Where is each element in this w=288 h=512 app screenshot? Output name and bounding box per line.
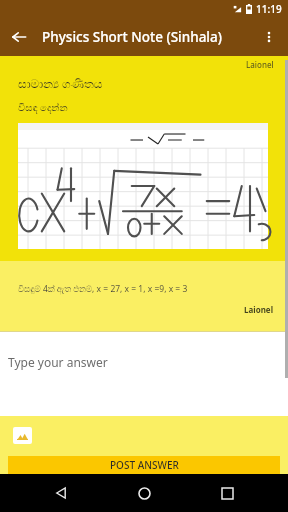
button[interactable]: Attach image [8,423,36,448]
button[interactable]: Home [122,474,166,512]
staticText: විසඳ දෙන්න [18,100,68,114]
staticText: 11:19 [256,2,282,16]
staticText: විසඳුම් 4ක් ඇත එනම්, x = 27, x = 1, x =9… [18,283,188,295]
button[interactable]: POST ANSWER [8,456,280,474]
staticText: Physics Short Note (Sinhala) [42,28,250,46]
staticText: POST ANSWER [110,458,179,472]
button[interactable]: More options [250,18,288,56]
button[interactable]: Recents [205,474,249,512]
staticText: Laionel [244,304,274,315]
button[interactable]: Back [39,474,83,512]
staticText: සාමාන්‍ය ගණිතය [18,75,103,91]
staticText: Laionel [246,59,274,70]
button[interactable]: Back [0,18,38,56]
staticText: Type your answer [8,354,108,370]
button[interactable]: Type your answer [0,332,288,416]
